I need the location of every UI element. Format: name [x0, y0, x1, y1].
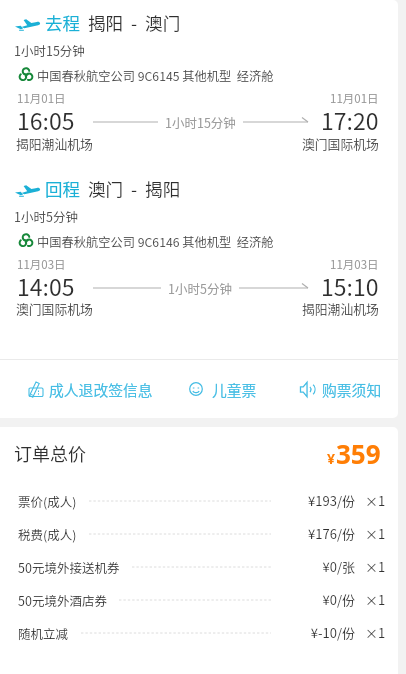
staticText: 回程: [45, 176, 80, 201]
staticText: 1小时15分钟: [165, 113, 236, 131]
staticText: 儿童票: [212, 379, 257, 400]
staticText: ×1: [365, 524, 386, 543]
staticText: 成人退改签信息: [49, 379, 153, 400]
staticText: ×1: [365, 623, 386, 642]
staticText: 票价(成人): [18, 492, 77, 510]
staticText: 1小时15分钟: [14, 41, 85, 59]
staticText: 揭阳潮汕机场: [302, 299, 379, 318]
button[interactable]: 购票须知: [291, 360, 371, 418]
staticText: ¥-10/份: [292, 623, 355, 642]
staticText: 14:05: [17, 269, 75, 302]
staticText: 17:20: [321, 103, 379, 136]
staticText: ×1: [365, 590, 386, 609]
staticText: 359: [336, 436, 381, 471]
staticText: ¥0/份: [292, 590, 355, 609]
staticText: 11月03日: [17, 256, 66, 273]
staticText: ×1: [365, 491, 386, 510]
staticText: 中国春秋航空公司 9C6145 其他机型 经济舱: [37, 67, 274, 85]
staticText: ¥0/张: [292, 557, 355, 576]
staticText: 澳门国际机场: [16, 299, 93, 318]
button[interactable]: 成人退改签信息: [18, 360, 178, 418]
staticText: 50元境外接送机券: [18, 558, 120, 576]
staticText: 15:10: [321, 269, 379, 302]
staticText: 订单总价: [14, 440, 86, 466]
staticText: 购票须知: [322, 379, 382, 400]
staticText: 去程: [45, 10, 80, 35]
staticText: 11月01日: [330, 90, 379, 107]
button[interactable]: 儿童票: [180, 360, 250, 418]
staticText: 随机立减: [18, 624, 69, 642]
staticText: 11月01日: [17, 90, 66, 107]
staticText: 50元境外酒店券: [18, 591, 107, 609]
staticText: ×1: [365, 557, 386, 576]
staticText: 中国春秋航空公司 9C6146 其他机型 经济舱: [37, 233, 274, 251]
staticText: 揭阳潮汕机场: [16, 134, 93, 153]
staticText: ¥: [327, 449, 336, 468]
staticText: 1小时5分钟: [168, 279, 232, 297]
staticText: 税费(成人): [18, 525, 77, 543]
staticText: 1小时5分钟: [14, 207, 78, 225]
staticText: 澳门 - 揭阳: [88, 176, 181, 201]
staticText: 11月03日: [330, 256, 379, 273]
staticText: 澳门国际机场: [302, 134, 379, 153]
staticText: 揭阳 - 澳门: [88, 10, 181, 35]
staticText: 16:05: [17, 103, 75, 136]
staticText: ¥176/份: [292, 524, 355, 543]
staticText: ¥193/份: [292, 491, 355, 510]
